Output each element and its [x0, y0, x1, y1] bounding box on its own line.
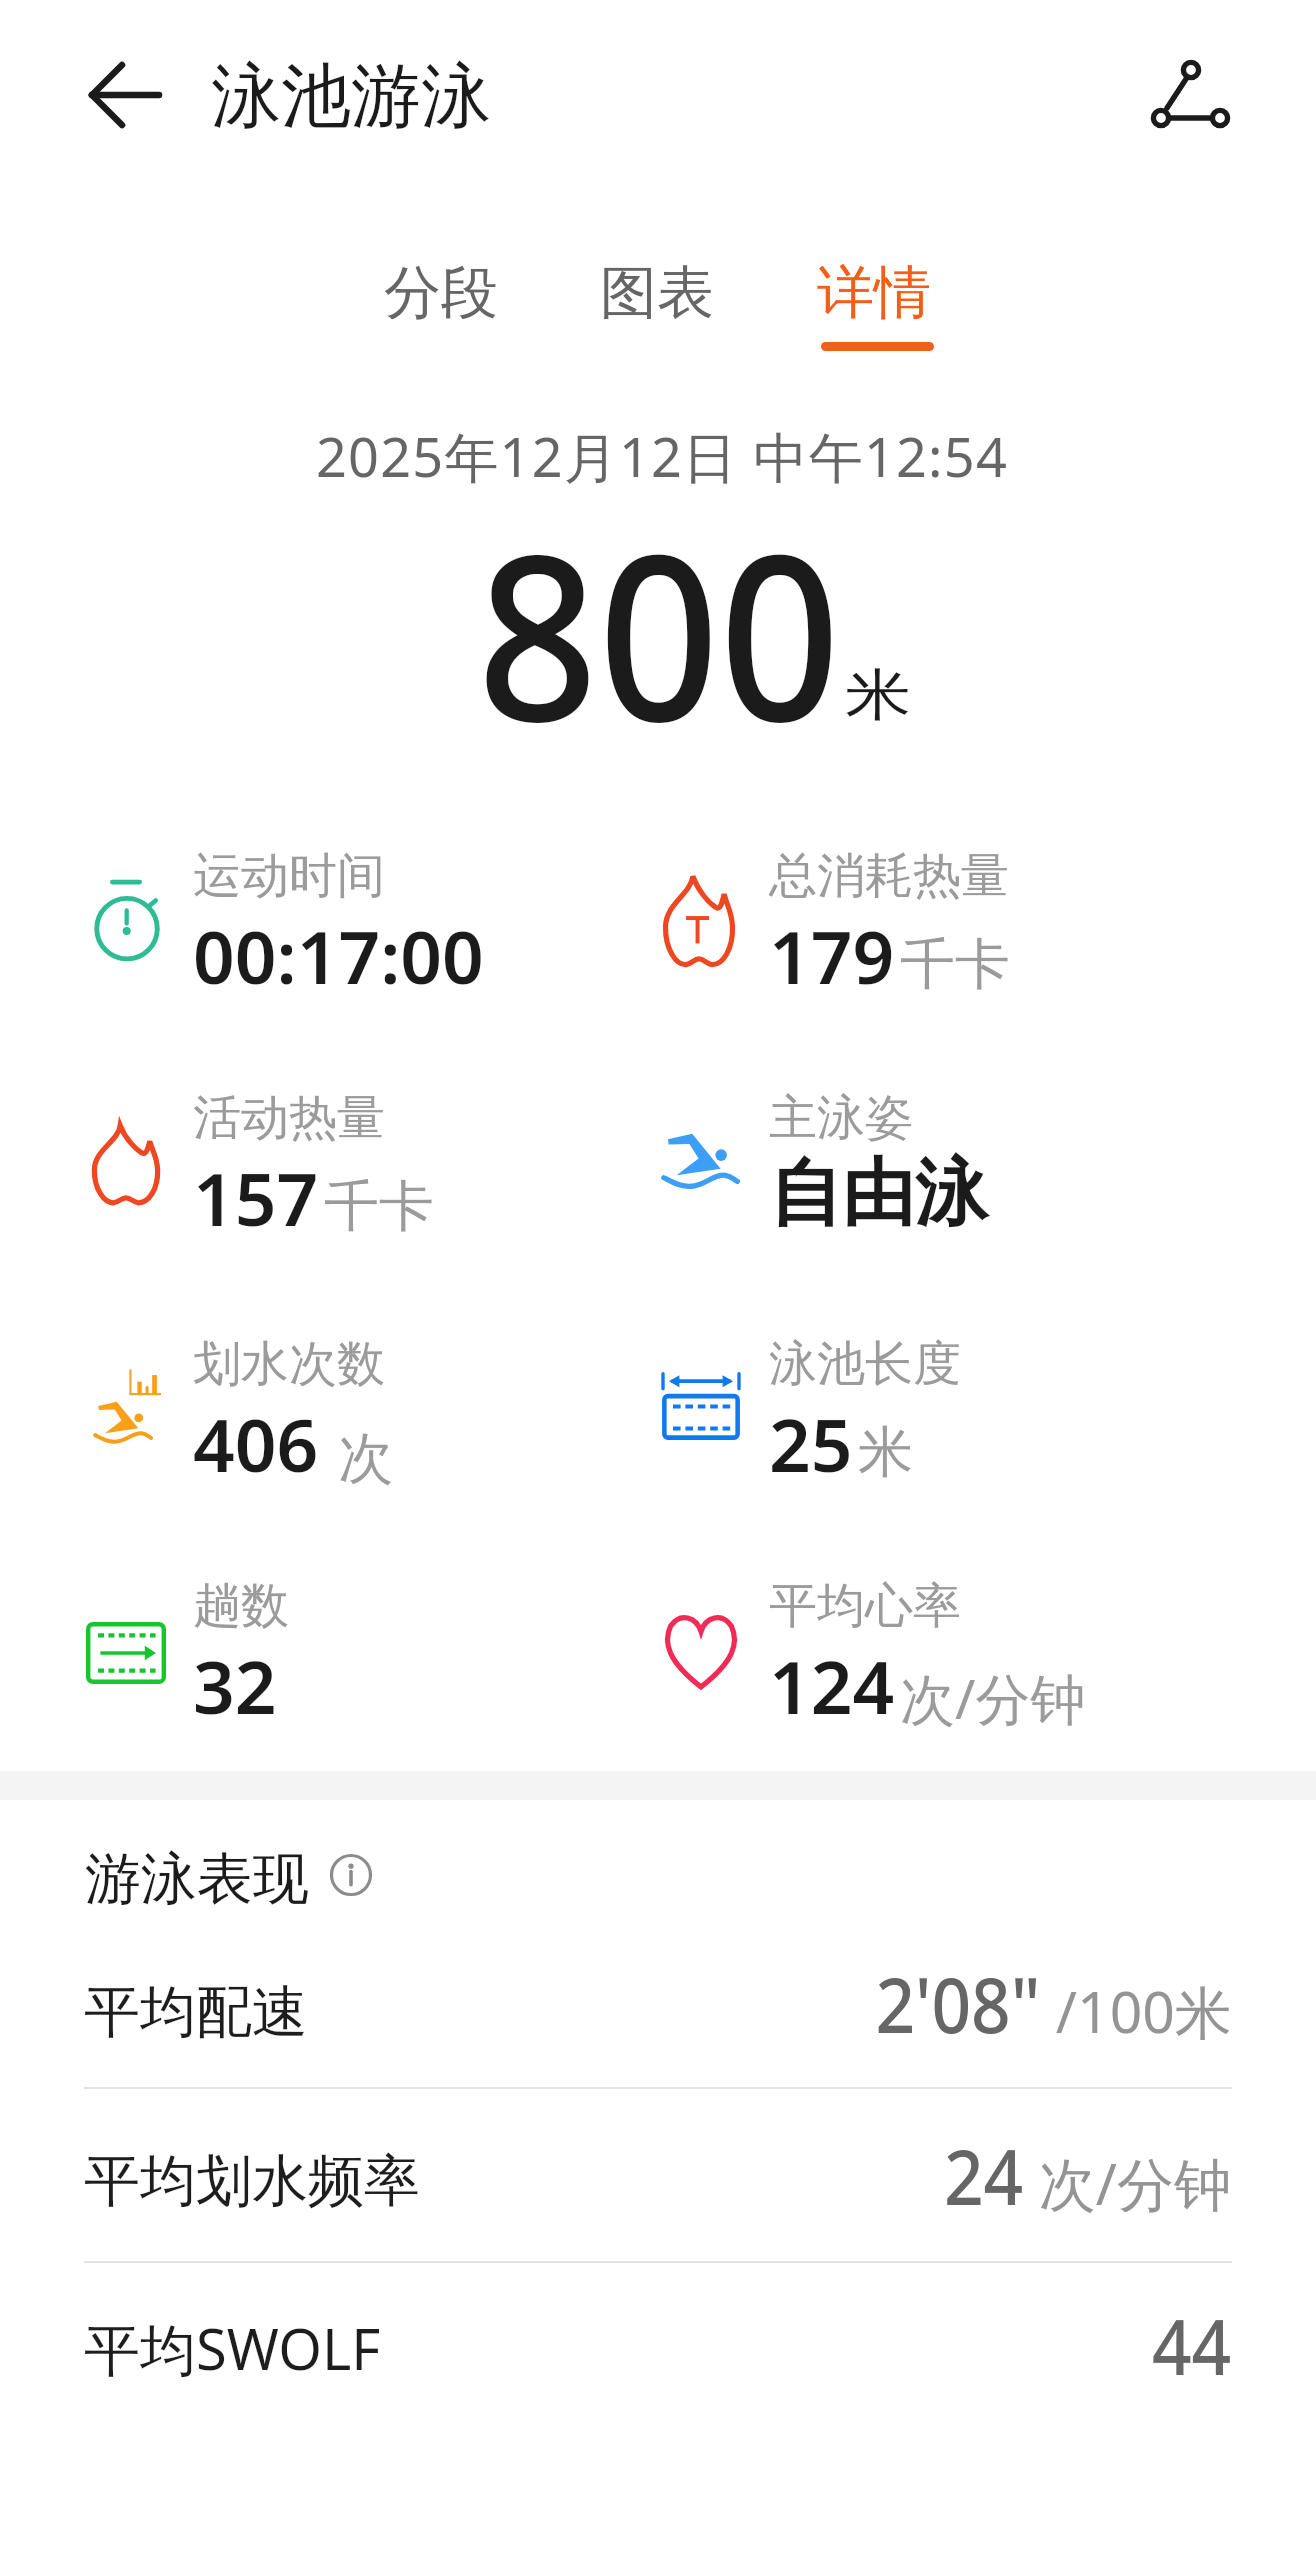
staticText: 运动时间	[193, 846, 385, 906]
staticText: 406	[193, 1394, 319, 1493]
staticText: 800	[477, 476, 840, 788]
staticText: 179	[769, 906, 895, 1005]
button[interactable]: 分段	[366, 240, 516, 368]
staticText: 次/分钟	[1024, 2144, 1232, 2222]
staticText: 详情	[817, 257, 931, 329]
staticText: 泳池游泳	[211, 53, 491, 141]
staticText: 平均划水频率	[84, 2146, 420, 2217]
staticText: 米	[845, 660, 911, 731]
staticText: 千卡	[324, 1172, 434, 1241]
staticText: 124	[769, 1636, 895, 1735]
staticText: 2'08"	[875, 1951, 1041, 2056]
button[interactable]: Share	[1124, 32, 1248, 156]
staticText: 2025年12月12日 中午12:54	[316, 419, 1008, 493]
staticText: /100米	[1041, 1972, 1232, 2050]
staticText: 趟数	[193, 1576, 289, 1636]
staticText: 图表	[600, 257, 714, 329]
staticText: 44	[1152, 2293, 1232, 2398]
staticText: 游泳表现	[85, 1844, 309, 1915]
staticText: 157	[193, 1148, 319, 1247]
staticText: 32	[193, 1636, 277, 1735]
staticText: 总消耗热量	[769, 846, 1009, 906]
staticText: 次	[324, 1418, 394, 1493]
button[interactable]: 平均划水频率	[0, 2091, 1316, 2263]
staticText: 平均SWOLF	[84, 2310, 381, 2386]
staticText: 次/分钟	[900, 1660, 1086, 1735]
staticText: 千卡	[900, 930, 1010, 999]
staticText: 主泳姿	[769, 1088, 913, 1148]
button[interactable]: Info	[329, 1853, 373, 1897]
staticText: 米	[858, 1418, 913, 1487]
button[interactable]: 平均SWOLF	[0, 2261, 1316, 2433]
staticText: 24	[944, 2123, 1024, 2228]
button[interactable]: Back	[62, 48, 162, 144]
staticText: 分段	[384, 257, 498, 329]
staticText: 25	[769, 1394, 853, 1493]
button[interactable]: 平均配速	[0, 1919, 1316, 2091]
button[interactable]: 详情	[799, 240, 949, 368]
staticText: 平均心率	[769, 1576, 961, 1636]
staticText: 活动热量	[193, 1088, 385, 1148]
staticText: 00:17:00	[193, 906, 484, 1005]
staticText: 平均配速	[84, 1977, 308, 2048]
staticText: 划水次数	[193, 1334, 385, 1394]
staticText: 自由泳	[769, 1148, 988, 1240]
button[interactable]: 图表	[582, 240, 732, 368]
staticText: 泳池长度	[769, 1334, 961, 1394]
